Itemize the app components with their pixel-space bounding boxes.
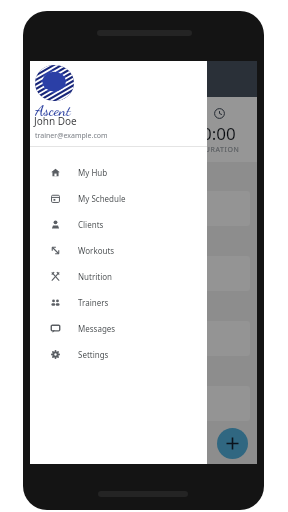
button[interactable]: Settings [30,341,207,367]
staticText: SESSIONS [49,145,87,155]
staticText: DURATION [199,145,240,155]
staticText: Ascent [35,101,71,119]
staticText: My Schedule [78,193,126,204]
button[interactable]: 12 [30,97,105,162]
button[interactable]: Nutrition [30,263,207,289]
staticText: 0:00 [202,122,236,145]
button[interactable]: 480 [105,97,181,162]
button[interactable] [37,386,250,421]
button[interactable] [37,191,250,226]
button[interactable]: Messages [30,315,207,341]
button[interactable] [37,321,250,356]
button[interactable] [37,256,250,291]
staticText: Clients [78,219,104,230]
staticText: Trainers [78,297,109,308]
button[interactable]: My Schedule [30,185,207,211]
staticText: John Doe [34,114,77,128]
staticText: 12 [58,122,78,145]
button[interactable]: My Hub [30,159,207,185]
button[interactable]: Workouts [30,237,207,263]
staticText: Messages [78,323,116,334]
button[interactable]: 0:00 [181,97,257,162]
staticText: Nutrition [78,271,113,282]
button[interactable]: Add session [217,428,248,459]
button[interactable]: Trainers [30,289,207,315]
staticText: Settings [78,349,109,360]
staticText: Workouts [78,245,115,256]
staticText: My Hub [78,167,108,178]
button[interactable]: Clients [30,211,207,237]
staticText: trainer@example.com [35,131,108,141]
staticText: CALORIES [124,145,162,155]
